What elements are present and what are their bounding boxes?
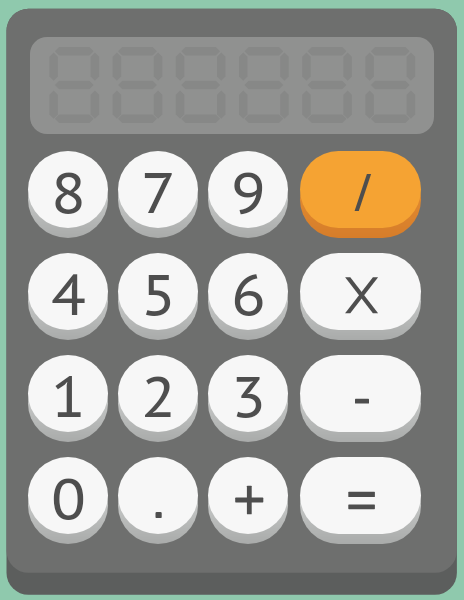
button[interactable]: Equals [300,457,421,547]
button[interactable]: 9 [208,151,288,241]
staticText: 6 [231,256,266,331]
button[interactable]: Divide [300,151,421,241]
staticText: 1 [51,358,86,433]
button[interactable]: 6 [208,253,288,343]
button[interactable]: 1 [28,355,108,445]
staticText: 9 [231,154,266,229]
staticText: 3 [231,358,266,433]
staticText: 2 [141,358,176,433]
staticText: 7 [141,154,176,229]
button[interactable]: 8 [28,151,108,241]
button[interactable]: 7 [118,151,198,241]
staticText: 0 [51,460,86,535]
staticText: 4 [51,256,86,331]
button[interactable]: Decimal point [118,457,198,547]
button[interactable]: 0 [28,457,108,547]
button[interactable]: Plus [208,457,288,547]
staticText: 8 [51,154,86,229]
button[interactable]: 4 [28,253,108,343]
button[interactable]: 2 [118,355,198,445]
button[interactable]: Multiply [300,253,421,343]
staticText: 5 [141,256,176,331]
button[interactable]: Minus [300,355,421,445]
button[interactable]: 3 [208,355,288,445]
button[interactable]: 5 [118,253,198,343]
